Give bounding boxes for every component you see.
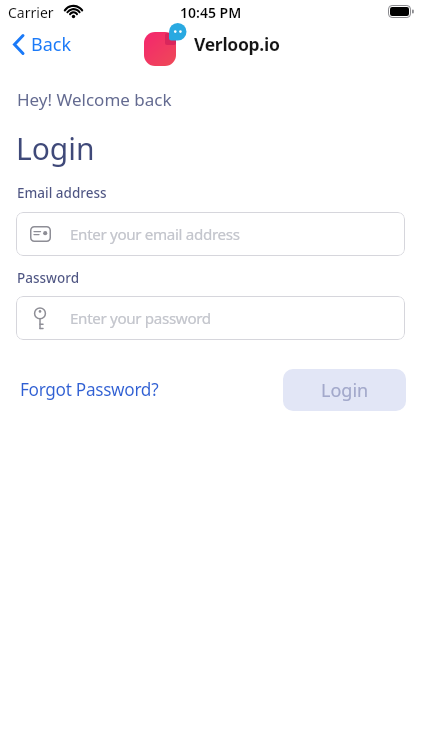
button[interactable]: Forgot Password? bbox=[20, 374, 159, 405]
staticText: Password bbox=[17, 269, 80, 287]
staticText: Back bbox=[31, 32, 72, 57]
staticText: Forgot Password? bbox=[20, 378, 159, 401]
staticText: Enter your password bbox=[70, 308, 211, 329]
staticText: Verloop.io bbox=[194, 32, 280, 56]
staticText: Login bbox=[16, 128, 95, 169]
button[interactable]: Login bbox=[283, 369, 406, 411]
staticText: Login bbox=[321, 378, 369, 403]
staticText: Carrier bbox=[8, 3, 54, 22]
staticText: Email address bbox=[17, 184, 107, 202]
button[interactable]: Enter your email address bbox=[16, 212, 405, 256]
button[interactable]: Enter your password bbox=[16, 296, 405, 340]
staticText: 10:45 PM bbox=[180, 3, 242, 22]
button[interactable]: Back bbox=[8, 28, 76, 61]
staticText: Hey! Welcome back bbox=[17, 88, 172, 111]
staticText: Enter your email address bbox=[70, 224, 240, 245]
